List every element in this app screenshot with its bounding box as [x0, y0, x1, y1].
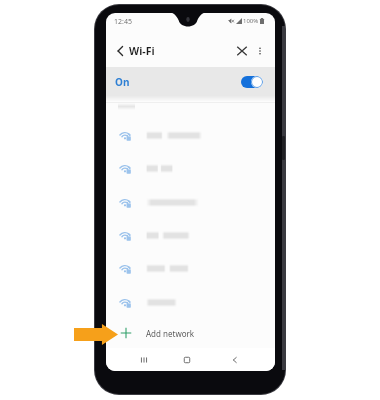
button[interactable]: More options — [253, 44, 267, 58]
button[interactable]: Add network — [106, 319, 275, 347]
button[interactable] — [106, 286, 275, 319]
button[interactable] — [106, 219, 275, 252]
other: Pointer — [74, 324, 118, 345]
button[interactable] — [106, 252, 275, 285]
button[interactable]: Back — [227, 352, 243, 368]
staticText: On — [115, 75, 130, 89]
button[interactable]: Home — [179, 352, 195, 368]
staticText: Add network — [146, 328, 195, 339]
staticText: Wi-Fi — [129, 44, 155, 58]
staticText: 100% — [243, 17, 259, 25]
button[interactable]: Recents — [136, 352, 152, 368]
button[interactable]: On — [106, 67, 275, 96]
button[interactable] — [106, 186, 275, 219]
button[interactable] — [106, 119, 275, 152]
button[interactable]: Back — [112, 43, 128, 59]
button[interactable] — [106, 152, 275, 185]
button[interactable]: Scan — [235, 44, 249, 58]
staticText: 12:45 — [114, 17, 132, 27]
